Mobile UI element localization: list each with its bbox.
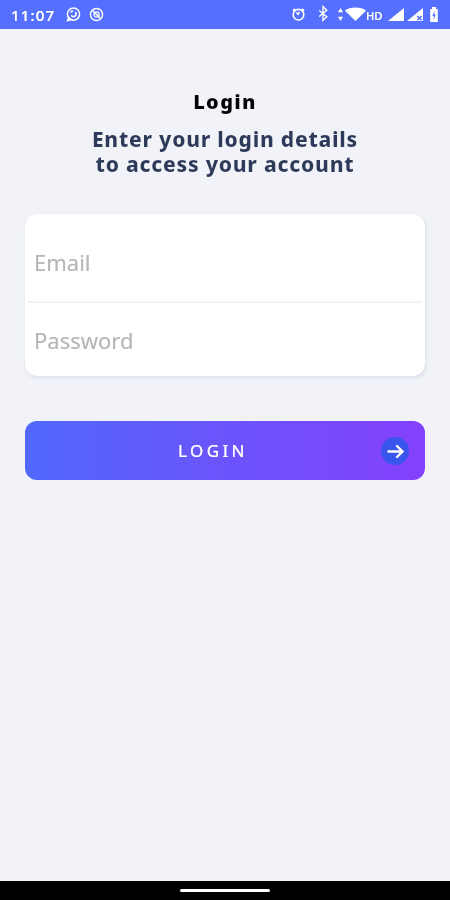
staticText: LOGIN	[178, 439, 248, 462]
staticText: Password	[34, 325, 134, 355]
staticText: HD	[366, 8, 383, 23]
staticText: 11:07	[11, 5, 56, 25]
staticText: Email	[34, 247, 91, 277]
other: Submit	[381, 437, 409, 465]
button[interactable]: Password	[25, 303, 425, 376]
button[interactable]: LOGIN	[25, 421, 425, 480]
staticText: Login	[0, 88, 450, 115]
button[interactable]: Email	[25, 214, 425, 301]
staticText: Enter your login details to access your …	[0, 125, 450, 178]
